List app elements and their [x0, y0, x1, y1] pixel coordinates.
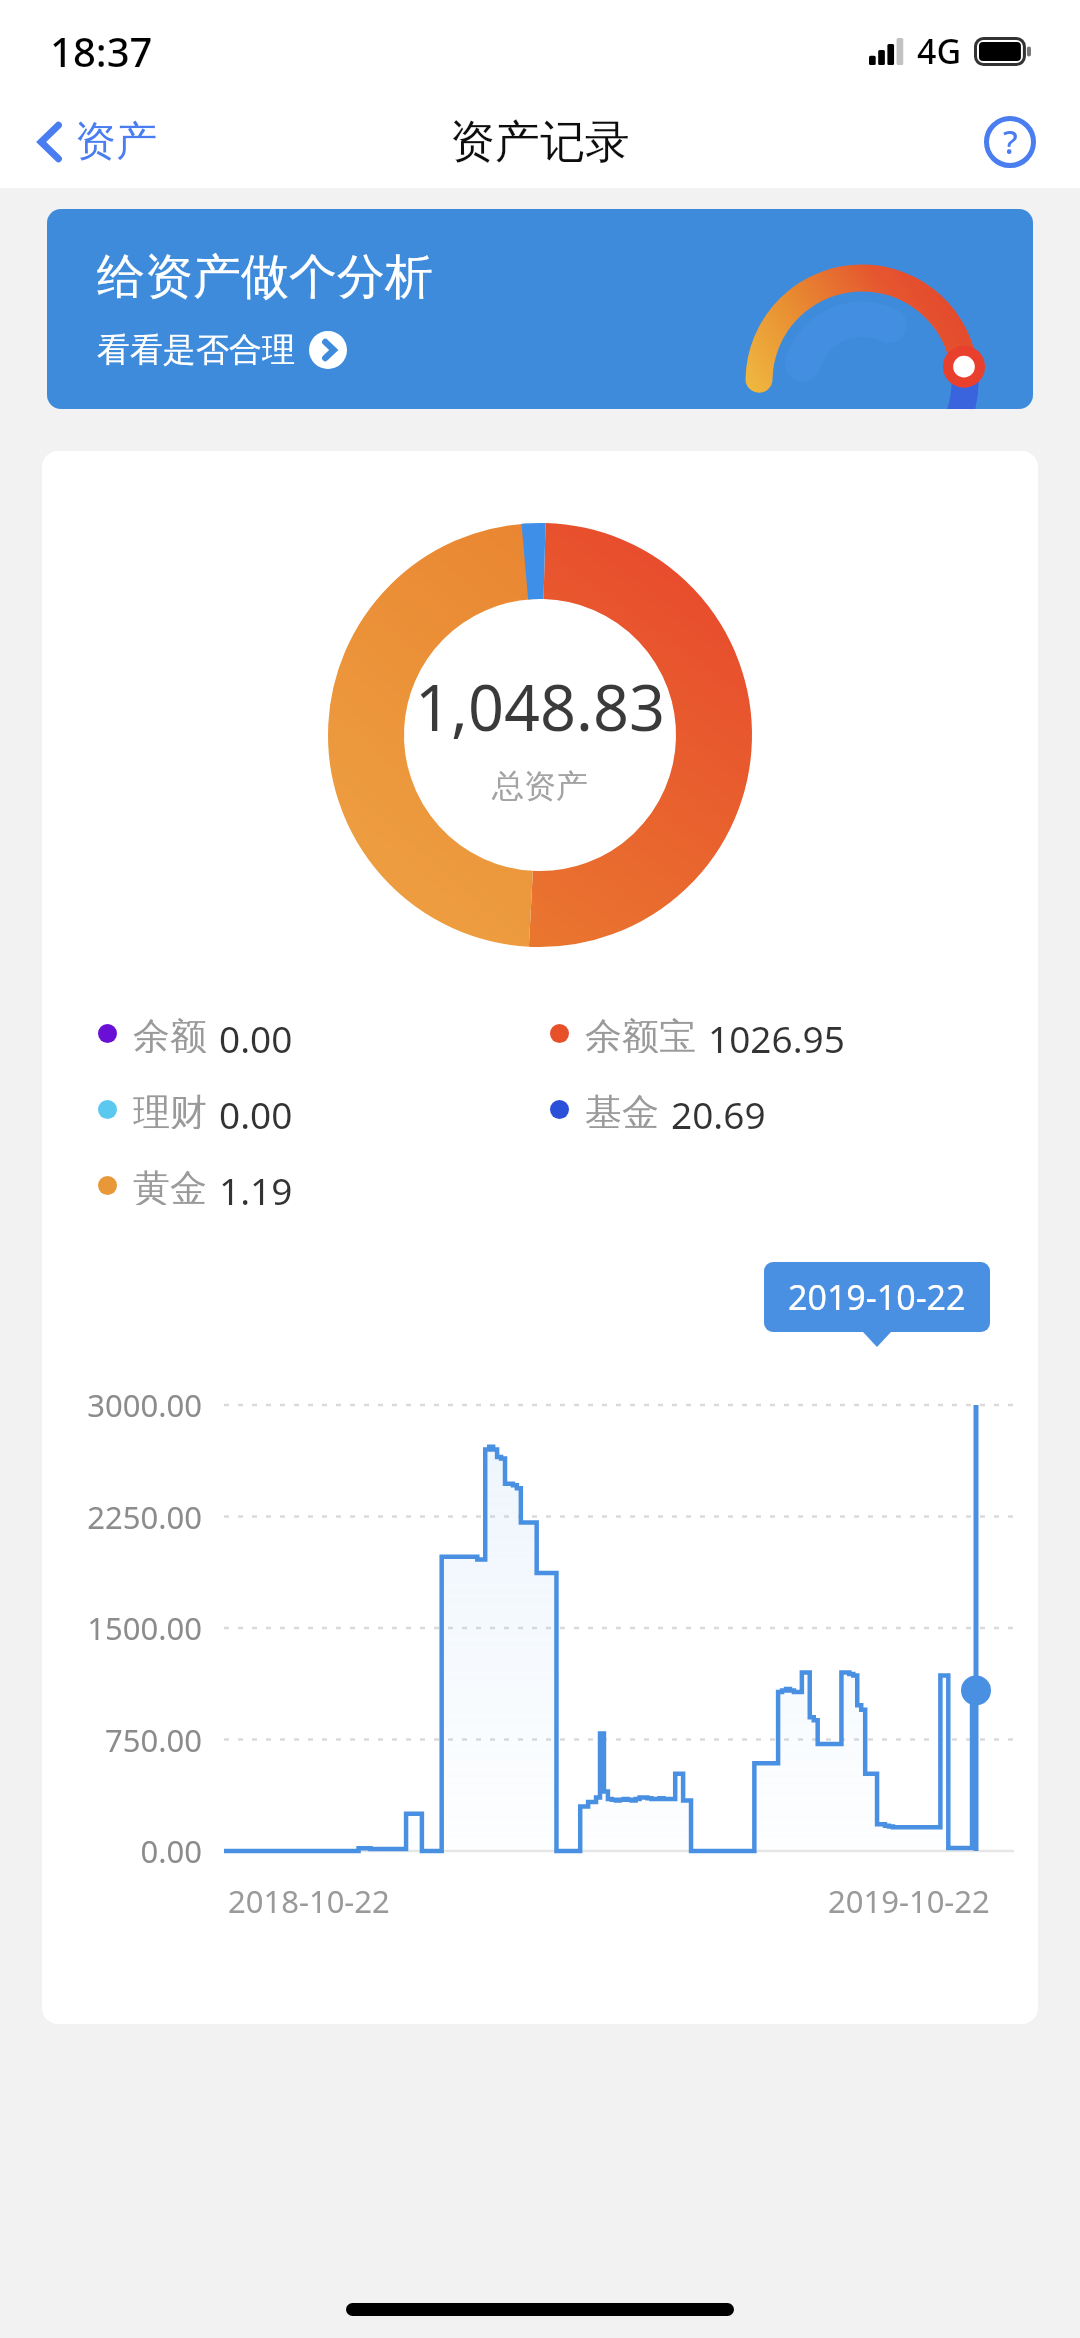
staticText: 看看是否合理: [97, 329, 295, 371]
staticText: 1.19: [219, 1165, 293, 1205]
staticText: 2019-10-22: [828, 1880, 990, 1922]
staticText: 2250.00: [42, 1496, 202, 1538]
staticText: 2019-10-22: [788, 1274, 966, 1320]
staticText: ?: [1003, 119, 1018, 164]
staticText: 2018-10-22: [228, 1880, 390, 1922]
staticText: 0.00: [219, 1013, 293, 1053]
button[interactable]: 2019-10-22: [788, 1274, 966, 1320]
staticText: 4G: [917, 28, 962, 74]
staticText: 资产记录: [450, 114, 630, 171]
staticText: 理财: [133, 1089, 207, 1129]
staticText: 基金: [585, 1089, 659, 1129]
staticText: 0.00: [42, 1830, 202, 1872]
staticText: 1500.00: [42, 1607, 202, 1649]
button[interactable]: Help: [980, 112, 1040, 172]
staticText: 1,048.83: [415, 664, 665, 750]
staticText: 给资产做个分析: [97, 247, 433, 307]
staticText: 750.00: [42, 1719, 202, 1761]
staticText: 黄金: [133, 1165, 207, 1205]
staticText: 3000.00: [42, 1384, 202, 1426]
staticText: 资产: [75, 116, 157, 168]
staticText: 20.69: [671, 1089, 766, 1129]
button[interactable]: 资产: [0, 106, 179, 178]
staticText: 余额: [133, 1013, 207, 1053]
staticText: 总资产: [492, 766, 588, 806]
staticText: 18:37: [50, 24, 153, 78]
button[interactable]: 给资产做个分析: [47, 209, 1033, 409]
staticText: 余额宝: [585, 1013, 696, 1053]
staticText: 0.00: [219, 1089, 293, 1129]
staticText: 1026.95: [708, 1013, 845, 1053]
